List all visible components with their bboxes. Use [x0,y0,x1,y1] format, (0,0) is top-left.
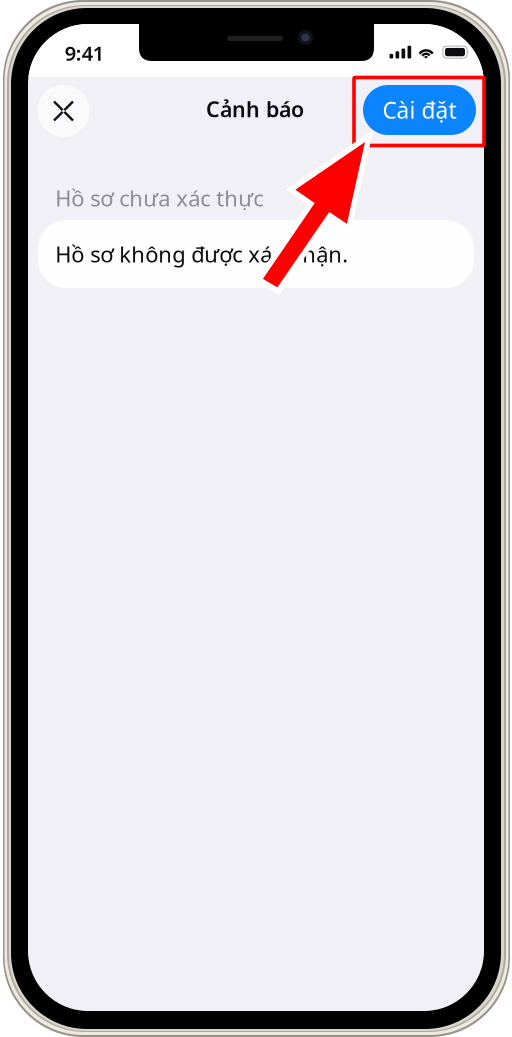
staticText: Hồ sơ không được xác nhận. [55,239,348,269]
button[interactable]: Cài đặt [363,85,476,135]
staticText: 9:41 [65,39,104,67]
staticText: Cài đặt [382,95,456,125]
button[interactable]: Close [37,85,89,137]
staticText: Hồ sơ chưa xác thực [55,183,263,213]
staticText: Cảnh báo [206,94,304,124]
